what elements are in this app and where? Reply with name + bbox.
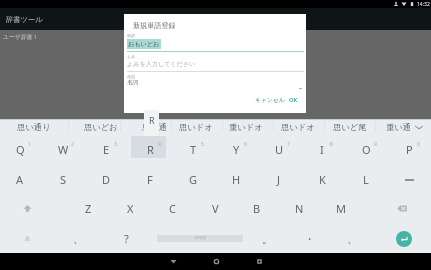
- staticText: 辞書ツール: [6, 15, 43, 24]
- button[interactable]: I: [301, 135, 343, 164]
- button[interactable]: G: [172, 165, 214, 194]
- button[interactable]: X: [109, 194, 151, 223]
- button[interactable]: 思いど尾: [326, 120, 374, 134]
- button[interactable]: Y: [215, 135, 257, 164]
- staticText: R: [147, 142, 154, 157]
- button[interactable]: Switch input mode: [1, 224, 55, 253]
- staticText: I: [320, 142, 324, 157]
- staticText: 0: [417, 141, 420, 148]
- staticText: 思いど尾: [333, 122, 367, 132]
- staticText: おもいどお: [128, 40, 160, 48]
- button[interactable]: 重いドオ: [222, 120, 270, 134]
- button[interactable]: Recents: [244, 253, 274, 270]
- button[interactable]: Backspace: [374, 194, 429, 223]
- staticText: Y: [233, 142, 240, 157]
- staticText: M: [336, 201, 346, 216]
- button[interactable]: J: [258, 165, 300, 194]
- button[interactable]: C: [151, 194, 193, 223]
- staticText: F: [147, 172, 153, 187]
- staticText: A: [16, 172, 24, 187]
- button[interactable]: B: [236, 194, 278, 223]
- staticText: ?: [124, 231, 129, 246]
- button[interactable]: キャンセル: [252, 94, 288, 105]
- button[interactable]: S: [42, 165, 84, 194]
- staticText: 2: [71, 141, 74, 148]
- staticText: X: [127, 201, 134, 216]
- button[interactable]: 思い通り: [10, 120, 58, 134]
- staticText: 思いドオ: [179, 122, 213, 132]
- button[interactable]: 思いドオ: [274, 120, 322, 134]
- staticText: あ: [25, 235, 31, 242]
- staticText: W: [58, 142, 69, 157]
- staticText: U: [275, 142, 284, 157]
- button[interactable]: 重い通: [375, 120, 423, 134]
- button[interactable]: F: [129, 165, 171, 194]
- staticText: OK: [289, 96, 298, 104]
- button[interactable]: H: [215, 165, 257, 194]
- button[interactable]: R: [129, 135, 171, 164]
- staticText: 思いドオ: [281, 122, 315, 132]
- staticText: 新規単語登録: [133, 21, 176, 30]
- button[interactable]: W: [42, 135, 84, 164]
- button[interactable]: P: [388, 135, 430, 164]
- button[interactable]: Back: [158, 253, 188, 270]
- button[interactable]: Home: [201, 253, 231, 270]
- button[interactable]: O: [345, 135, 387, 164]
- button[interactable]: L: [345, 165, 387, 194]
- button[interactable]: A: [0, 165, 41, 194]
- button[interactable]: 、: [331, 224, 373, 253]
- staticText: 8: [330, 141, 333, 148]
- button[interactable]: Shift: [0, 194, 54, 223]
- button[interactable]: N: [278, 194, 320, 223]
- button[interactable]: K: [301, 165, 343, 194]
- staticText: 単語: [127, 33, 135, 38]
- button[interactable]: ?: [105, 224, 147, 253]
- staticText: V: [212, 201, 219, 216]
- staticText: キャンセル: [255, 96, 285, 103]
- button[interactable]: U: [258, 135, 300, 164]
- staticText: 4: [158, 141, 161, 148]
- staticText: 1: [28, 141, 31, 148]
- button[interactable]: OK: [286, 94, 301, 106]
- staticText: 9: [374, 141, 377, 148]
- button[interactable]: V: [194, 194, 236, 223]
- staticText: C: [169, 201, 176, 216]
- staticText: H: [232, 172, 241, 187]
- button[interactable]: T: [172, 135, 214, 164]
- button[interactable]: More candidates: [409, 120, 429, 134]
- staticText: 日本語: [195, 236, 206, 241]
- button[interactable]: 思いどお: [77, 120, 125, 134]
- button[interactable]: 、: [57, 224, 99, 253]
- staticText: G: [189, 172, 198, 187]
- button[interactable]: Space: [154, 224, 246, 253]
- button[interactable]: Dash: [388, 165, 430, 194]
- staticText: 。: [262, 232, 273, 246]
- button[interactable]: Q: [0, 135, 41, 164]
- staticText: 、: [347, 232, 358, 246]
- button[interactable]: ・: [288, 224, 330, 253]
- button[interactable]: 。: [246, 224, 288, 253]
- button[interactable]: E: [85, 135, 127, 164]
- staticText: R: [149, 114, 155, 126]
- button[interactable]: 思い通: [131, 120, 179, 134]
- button[interactable]: Z: [67, 194, 109, 223]
- staticText: ・: [304, 232, 315, 246]
- staticText: 品詞: [127, 74, 135, 79]
- staticText: E: [103, 142, 110, 157]
- button[interactable]: M: [320, 194, 362, 223]
- staticText: L: [363, 172, 369, 187]
- staticText: よみを入力してください: [127, 60, 196, 68]
- staticText: B: [253, 201, 261, 216]
- staticText: 思いどお: [84, 122, 118, 132]
- button[interactable]: D: [85, 165, 127, 194]
- staticText: 3: [114, 141, 117, 148]
- staticText: O: [362, 142, 371, 157]
- staticText: S: [60, 172, 67, 187]
- button[interactable]: Enter: [381, 224, 426, 253]
- staticText: 、: [73, 232, 84, 246]
- staticText: ユーザ辞書 1: [3, 33, 38, 41]
- staticText: 6: [244, 141, 247, 148]
- staticText: 重い通: [386, 122, 412, 132]
- staticText: 7: [287, 141, 290, 148]
- button[interactable]: 思いドオ: [172, 120, 220, 134]
